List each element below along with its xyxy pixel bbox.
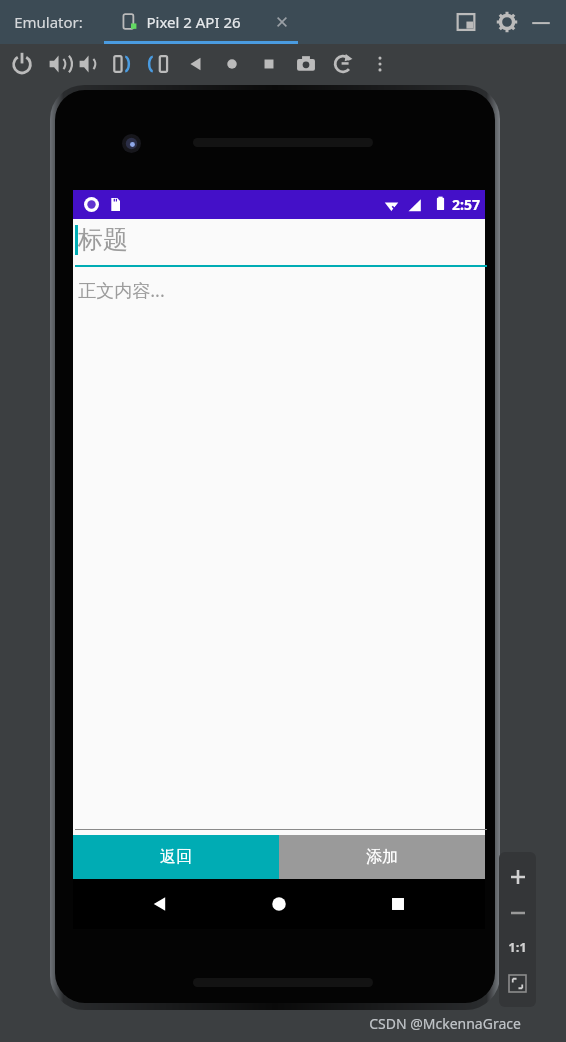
- button[interactable]: Fit to screen: [499, 964, 536, 1002]
- staticText: 添加: [366, 847, 398, 867]
- button[interactable]: Record: [329, 50, 357, 78]
- button[interactable]: More: [366, 50, 394, 78]
- button[interactable]: Back: [147, 891, 173, 917]
- button[interactable]: Dock: [455, 11, 477, 33]
- button[interactable]: Close tab: [272, 12, 292, 32]
- staticText: CSDN @MckennaGrace: [369, 1014, 521, 1033]
- button[interactable]: Home: [266, 891, 292, 917]
- button[interactable]: 1:1: [499, 930, 536, 964]
- staticText: Pixel 2 API 26: [146, 12, 241, 32]
- button[interactable]: Recents: [385, 891, 411, 917]
- staticText: Emulator:: [14, 12, 83, 32]
- staticText: 正文内容...: [78, 278, 165, 303]
- button[interactable]: Rotate right: [143, 50, 171, 78]
- staticText: 返回: [160, 847, 192, 867]
- button[interactable]: Volume down: [74, 50, 102, 78]
- staticText: 1:1: [508, 938, 527, 956]
- button[interactable]: Minimize: [530, 11, 552, 33]
- button[interactable]: 返回: [73, 835, 279, 879]
- button[interactable]: Home: [218, 50, 246, 78]
- button[interactable]: 添加: [279, 835, 485, 879]
- button[interactable]: Settings: [496, 11, 518, 33]
- button[interactable]: Back: [182, 50, 210, 78]
- button[interactable]: 标题: [73, 219, 485, 267]
- staticText: 2:57: [452, 195, 480, 214]
- button[interactable]: Zoom out: [499, 896, 536, 930]
- staticText: 标题: [78, 224, 128, 255]
- button[interactable]: Rotate left: [107, 50, 135, 78]
- button[interactable]: Pixel 2 API 26: [146, 0, 276, 44]
- button[interactable]: Zoom in: [499, 858, 536, 896]
- button[interactable]: 正文内容...: [73, 268, 485, 830]
- button[interactable]: Power: [8, 50, 36, 78]
- button[interactable]: Overview: [255, 50, 283, 78]
- button[interactable]: Screenshot: [292, 50, 320, 78]
- button[interactable]: Volume up: [44, 50, 72, 78]
